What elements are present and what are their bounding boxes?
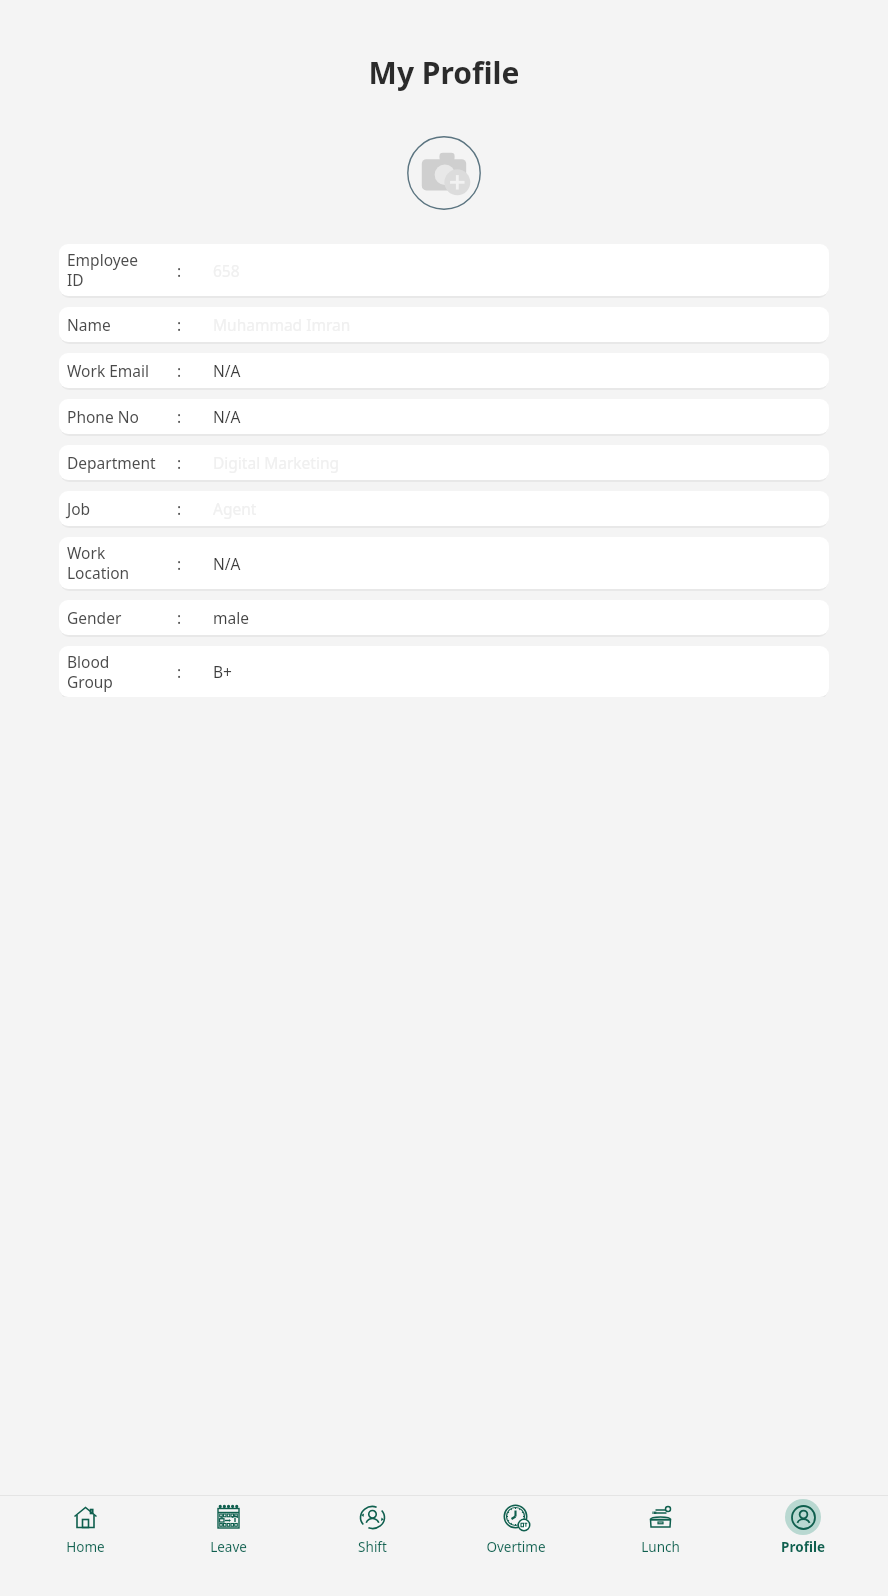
staticText: Agent bbox=[213, 498, 257, 519]
staticText: Home bbox=[66, 1538, 105, 1556]
staticText: B+ bbox=[213, 661, 232, 682]
staticText: Leave bbox=[210, 1538, 247, 1556]
staticText: Work Location bbox=[67, 542, 130, 584]
staticText: Lunch bbox=[641, 1538, 680, 1556]
staticText: Work Email bbox=[67, 360, 149, 381]
staticText: Gender bbox=[67, 607, 122, 628]
button[interactable]: Shift bbox=[313, 1499, 431, 1556]
staticText: Phone No bbox=[67, 406, 139, 427]
staticText: Department bbox=[67, 452, 156, 473]
button[interactable]: Department bbox=[59, 445, 829, 480]
staticText: : bbox=[177, 498, 182, 519]
staticText: : bbox=[177, 360, 182, 381]
staticText: Shift bbox=[358, 1538, 387, 1556]
button[interactable]: Gender bbox=[59, 600, 829, 635]
staticText: Blood Group bbox=[67, 651, 113, 693]
staticText: Employee ID bbox=[67, 249, 139, 291]
button[interactable]: Leave bbox=[169, 1499, 287, 1556]
staticText: N/A bbox=[213, 553, 241, 574]
button[interactable]: Name bbox=[59, 307, 829, 342]
staticText: N/A bbox=[213, 406, 241, 427]
staticText: Job bbox=[67, 498, 91, 519]
button[interactable]: Work Email bbox=[59, 353, 829, 388]
button[interactable]: Overtime bbox=[457, 1499, 575, 1556]
button[interactable]: Job bbox=[59, 491, 829, 526]
button[interactable]: Home bbox=[26, 1499, 144, 1556]
staticText: male bbox=[213, 607, 249, 628]
button[interactable]: Work Location bbox=[59, 537, 829, 589]
staticText: 658 bbox=[213, 260, 240, 281]
staticText: N/A bbox=[213, 360, 241, 381]
staticText: Profile bbox=[781, 1538, 825, 1556]
button[interactable]: Blood Group bbox=[59, 646, 829, 697]
staticText: : bbox=[177, 260, 182, 281]
staticText: Digital Marketing bbox=[213, 452, 340, 473]
button[interactable]: Employee ID bbox=[59, 244, 829, 296]
staticText: Name bbox=[67, 314, 111, 335]
staticText: : bbox=[177, 406, 182, 427]
staticText: : bbox=[177, 607, 182, 628]
button[interactable]: Phone No bbox=[59, 399, 829, 434]
button[interactable]: Change profile photo bbox=[407, 136, 481, 210]
staticText: : bbox=[177, 452, 182, 473]
staticText: : bbox=[177, 314, 182, 335]
button[interactable]: Lunch bbox=[601, 1499, 719, 1556]
staticText: My Profile bbox=[0, 52, 888, 93]
staticText: Overtime bbox=[486, 1538, 546, 1556]
staticText: : bbox=[177, 553, 182, 574]
staticText: Muhammad Imran bbox=[213, 314, 351, 335]
staticText: : bbox=[177, 661, 182, 682]
button[interactable]: Profile bbox=[744, 1499, 862, 1556]
